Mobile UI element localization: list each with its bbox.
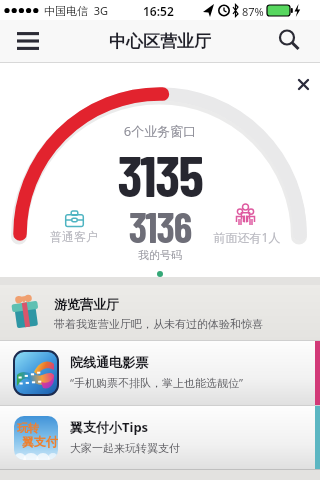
button[interactable] bbox=[10, 23, 46, 59]
staticText: 翼支付 bbox=[22, 434, 58, 449]
button[interactable]: 院线通电影票 bbox=[0, 341, 320, 405]
staticText: 中国电信 3G bbox=[44, 3, 109, 18]
staticText: 翼支付小Tips bbox=[70, 418, 149, 436]
staticText: 前面还有1人 bbox=[205, 229, 289, 245]
button[interactable] bbox=[291, 72, 315, 96]
button[interactable]: 游览营业厅 bbox=[0, 285, 320, 340]
staticText: 3135 bbox=[0, 140, 320, 208]
staticText: 院线通电影票 bbox=[70, 354, 148, 370]
staticText: 87% bbox=[242, 4, 264, 19]
staticText: 游览营业厅 bbox=[54, 296, 119, 312]
staticText: “手机购票不排队，掌上也能选靓位” bbox=[70, 375, 243, 390]
button[interactable]: 玩转 bbox=[0, 406, 320, 469]
staticText: 带着我逛营业厅吧，从未有过的体验和惊喜 bbox=[54, 317, 263, 331]
staticText: 中心区营业厅 bbox=[109, 31, 211, 52]
staticText: 16:52 bbox=[143, 3, 174, 19]
button[interactable] bbox=[272, 23, 308, 59]
staticText: 玩转 bbox=[17, 421, 39, 435]
staticText: 6个业务窗口 bbox=[0, 122, 320, 140]
staticText: 我的号码 bbox=[0, 248, 320, 262]
staticText: 普通客户 bbox=[42, 229, 106, 244]
staticText: 大家一起来玩转翼支付 bbox=[70, 441, 180, 455]
staticText: 3136 bbox=[0, 201, 320, 251]
